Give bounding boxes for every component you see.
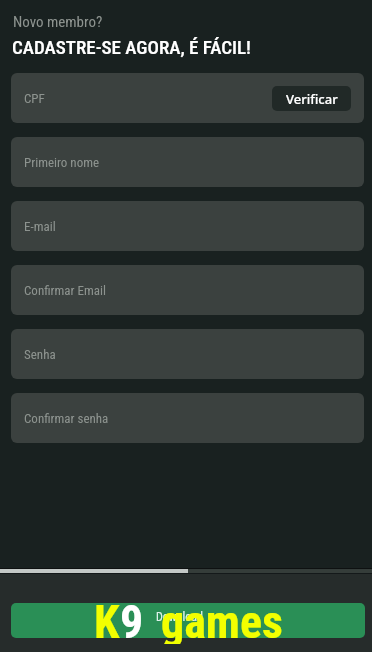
- staticText: K: [94, 595, 120, 644]
- staticText: Primeiro nome: [24, 155, 100, 170]
- button[interactable]: Primeiro nome: [11, 137, 364, 187]
- button[interactable]: CPF: [11, 73, 364, 123]
- button[interactable]: Senha: [11, 329, 364, 379]
- staticText: games: [161, 595, 283, 644]
- staticText: Download: [156, 610, 203, 624]
- staticText: Senha: [24, 347, 56, 362]
- staticText: 9: [120, 595, 144, 644]
- staticText: Verificar: [286, 90, 338, 108]
- button[interactable]: Verificar: [272, 86, 351, 111]
- button[interactable]: Confirmar senha: [11, 393, 364, 443]
- button[interactable]: Confirmar Email: [11, 265, 364, 315]
- staticText: E-mail: [24, 219, 56, 234]
- staticText: Confirmar senha: [24, 411, 109, 426]
- staticText: CADASTRE-SE AGORA, É FÁCIL!: [12, 36, 251, 58]
- staticText: Novo membro?: [13, 13, 103, 31]
- button[interactable]: E-mail: [11, 201, 364, 251]
- button[interactable]: Download: [11, 595, 365, 644]
- staticText: CPF: [24, 91, 45, 106]
- staticText: Confirmar Email: [24, 283, 106, 298]
